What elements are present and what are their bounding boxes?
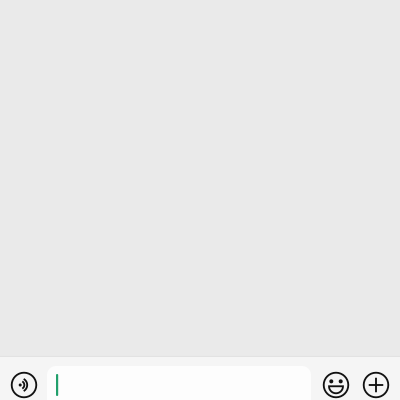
button[interactable]: Message	[47, 365, 311, 400]
button[interactable]: Attach	[356, 363, 396, 400]
button[interactable]: Voice message	[4, 363, 44, 400]
button[interactable]: Emoji	[316, 363, 356, 400]
